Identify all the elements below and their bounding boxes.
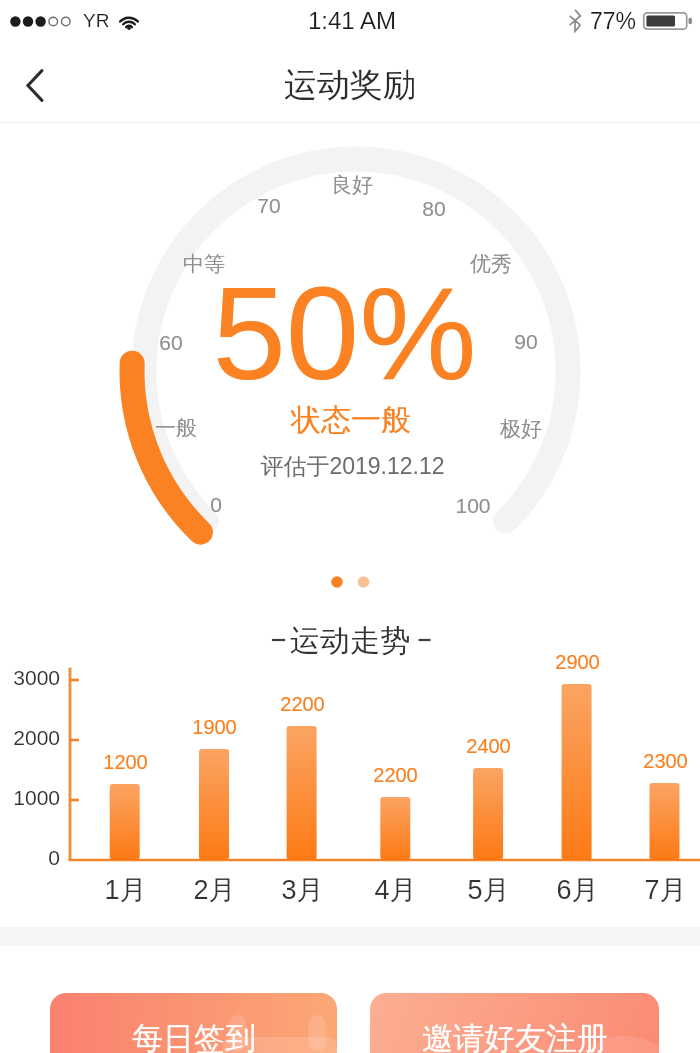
button[interactable]: 邀请好友注册 — [370, 993, 659, 1053]
staticText: 6月 — [556, 873, 599, 907]
staticText: 3月 — [281, 873, 324, 907]
button[interactable]: Back — [4, 54, 66, 116]
staticText: 状态一般 — [291, 401, 411, 439]
staticText: 邀请好友注册 — [422, 1019, 608, 1053]
staticText: 90 — [514, 330, 538, 353]
staticText: 5月 — [467, 873, 510, 907]
staticText: 2200 — [280, 693, 325, 715]
staticText: 极好 — [500, 416, 542, 442]
staticText: 2000 — [13, 726, 60, 749]
staticText: 中等 — [183, 251, 225, 277]
staticText: 1200 — [103, 751, 148, 773]
staticText: 良好 — [331, 172, 373, 198]
staticText: 运动奖励 — [284, 64, 416, 106]
staticText: 0 — [48, 846, 60, 869]
staticText: 1月 — [104, 873, 147, 907]
staticText: 运动走势 — [290, 622, 410, 660]
staticText: 70 — [257, 194, 281, 217]
staticText: 2400 — [466, 735, 511, 757]
staticText: 2300 — [643, 750, 688, 772]
staticText: 7月 — [644, 873, 687, 907]
staticText: 优秀 — [470, 251, 512, 277]
staticText: 3000 — [13, 666, 60, 689]
staticText: 1:41 AM — [308, 7, 397, 34]
staticText: 77% — [590, 8, 637, 34]
staticText: 评估于2019.12.12 — [260, 452, 445, 481]
staticText: 50% — [212, 260, 477, 407]
button[interactable]: 每日签到 — [50, 993, 337, 1053]
staticText: YR — [83, 10, 110, 31]
staticText: 2月 — [193, 873, 236, 907]
staticText: 1900 — [192, 716, 237, 738]
staticText: 100 — [455, 494, 491, 517]
staticText: 2200 — [373, 764, 418, 786]
staticText: 1000 — [13, 786, 60, 809]
staticText: 2900 — [555, 651, 600, 673]
staticText: 4月 — [374, 873, 417, 907]
staticText: 60 — [159, 331, 183, 354]
staticText: 一般 — [155, 415, 197, 441]
staticText: 每日签到 — [132, 1019, 256, 1053]
staticText: 0 — [210, 493, 222, 516]
staticText: 80 — [422, 197, 446, 220]
